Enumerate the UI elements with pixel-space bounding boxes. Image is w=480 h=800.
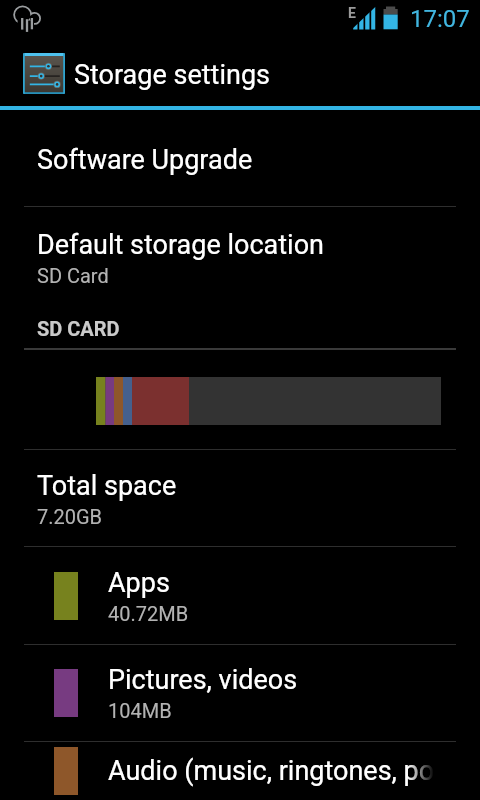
staticText: Pictures, videos xyxy=(108,664,298,696)
staticText: E xyxy=(348,5,356,21)
button[interactable]: Default storage location xyxy=(0,207,480,307)
button[interactable]: Software Upgrade xyxy=(0,110,480,206)
staticText: 17:07 xyxy=(410,5,470,33)
button[interactable]: Apps xyxy=(0,547,480,644)
staticText: 7.20GB xyxy=(37,505,103,528)
staticText: 40.72MB xyxy=(108,602,189,625)
staticText: Audio (music, ringtones, podcasts) xyxy=(108,755,480,787)
button[interactable]: Storage settings xyxy=(0,38,480,106)
staticText: SD Card xyxy=(37,264,109,287)
staticText: SD CARD xyxy=(37,317,120,340)
staticText: Storage settings xyxy=(74,59,270,91)
staticText: Apps xyxy=(108,567,170,599)
button[interactable]: Audio (music, ringtones, podcasts) xyxy=(0,742,480,800)
staticText: Total space xyxy=(37,470,177,502)
other: Storage settings xyxy=(23,53,65,94)
staticText: Default storage location xyxy=(37,229,324,261)
staticText: 104MB xyxy=(108,699,172,722)
button[interactable]: Total space xyxy=(0,450,480,546)
button[interactable]: Pictures, videos xyxy=(0,645,480,741)
staticText: Software Upgrade xyxy=(37,144,253,176)
